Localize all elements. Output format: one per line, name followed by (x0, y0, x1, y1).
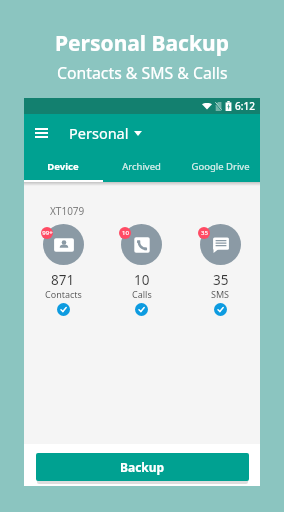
staticText: 6:12 (235, 99, 255, 113)
button[interactable]: 99+ (24, 224, 102, 316)
staticText: Archived (122, 160, 161, 173)
staticText: 35 (213, 271, 229, 289)
button[interactable]: Device (24, 152, 102, 180)
staticText: Calls (132, 288, 152, 300)
button[interactable]: Google Drive (181, 152, 260, 180)
button[interactable]: Open navigation menu (28, 120, 54, 146)
staticText: XT1079 (50, 204, 85, 218)
staticText: Contacts & SMS & Calls (57, 62, 228, 84)
button[interactable]: Archived (102, 152, 181, 180)
staticText: 35 (201, 229, 208, 237)
staticText: Personal (69, 123, 129, 143)
staticText: Device (47, 160, 79, 173)
staticText: 871 (51, 271, 75, 289)
staticText: 10 (134, 271, 150, 289)
staticText: Google Drive (191, 160, 250, 173)
staticText: 99+ (42, 229, 53, 237)
staticText: Personal Backup (55, 29, 229, 58)
staticText: Contacts (45, 288, 82, 300)
button[interactable]: 35 (181, 224, 260, 316)
staticText: 10 (122, 229, 129, 237)
button[interactable]: Backup (36, 453, 249, 481)
button[interactable]: Personal (69, 123, 142, 143)
button[interactable]: 10 (102, 224, 181, 316)
staticText: SMS (211, 288, 230, 300)
staticText: Backup (120, 459, 165, 475)
